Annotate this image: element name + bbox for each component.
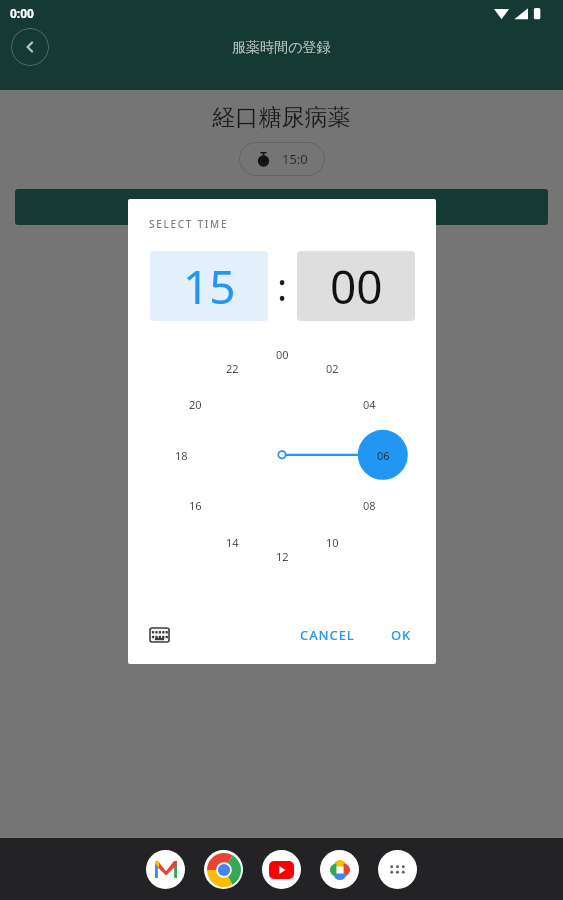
staticText: 00	[330, 255, 383, 318]
staticText: 15:0	[282, 150, 308, 168]
staticText: 02	[326, 361, 339, 376]
staticText: 04	[363, 397, 376, 412]
button[interactable]: 服薬時間を登録する	[15, 189, 548, 225]
staticText: 服薬時間の登録	[232, 39, 331, 57]
staticText: 22	[226, 361, 239, 376]
staticText: 08	[363, 498, 376, 513]
staticText: 12	[276, 549, 289, 564]
staticText: 15	[183, 255, 236, 318]
staticText: 00	[276, 347, 289, 362]
staticText: 16	[189, 498, 202, 513]
button[interactable]: 15:0	[239, 142, 325, 176]
staticText: CANCEL	[300, 626, 355, 644]
button[interactable]: Chrome	[204, 850, 243, 889]
staticText: 14	[226, 535, 239, 550]
staticText: OK	[391, 626, 412, 644]
button[interactable]: Photos	[320, 850, 359, 889]
button[interactable]: YouTube	[262, 850, 301, 889]
button[interactable]: Back	[11, 28, 49, 66]
button[interactable]: OK	[381, 618, 422, 652]
staticText: 服薬時間を登録する	[218, 198, 345, 216]
button[interactable]: 15	[150, 251, 268, 321]
button[interactable]: All apps	[378, 850, 417, 889]
staticText: 06	[377, 448, 390, 463]
staticText: 20	[189, 397, 202, 412]
staticText: 18	[175, 448, 188, 463]
button[interactable]: CANCEL	[290, 618, 365, 652]
button[interactable]: Gmail	[146, 850, 185, 889]
button[interactable]: Switch to text input	[142, 618, 176, 652]
staticText: 0:00	[10, 5, 34, 21]
staticText: 10	[326, 535, 339, 550]
staticText: SELECT TIME	[149, 217, 229, 231]
staticText: 経口糖尿病薬	[0, 103, 563, 132]
staticText: :	[277, 260, 288, 312]
button[interactable]: 00	[297, 251, 415, 321]
